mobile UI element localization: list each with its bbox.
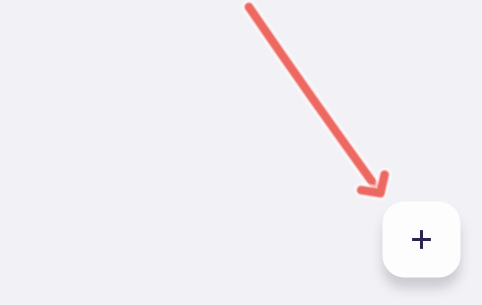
button[interactable]: Add — [382, 201, 460, 277]
